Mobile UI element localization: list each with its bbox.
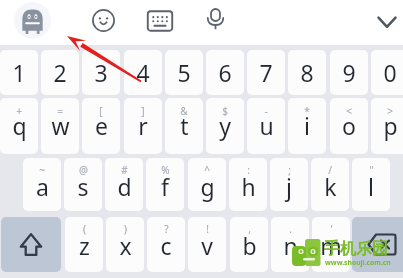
- staticText: r: [138, 110, 148, 141]
- button[interactable]: 2: [41, 50, 79, 95]
- button[interactable]: ;: [270, 158, 308, 211]
- staticText: k: [324, 171, 337, 202]
- button[interactable]: -: [247, 98, 285, 154]
- button[interactable]: @: [64, 158, 102, 211]
- button[interactable]: /: [311, 158, 349, 211]
- staticText: f: [161, 171, 169, 202]
- staticText: ,: [248, 222, 251, 236]
- staticText: t: [180, 110, 189, 141]
- staticText: g: [200, 171, 215, 202]
- button[interactable]: Switch keyboard: [147, 8, 173, 34]
- staticText: n: [283, 230, 298, 261]
- staticText: [: [99, 104, 103, 118]
- button[interactable]: ]: [124, 98, 162, 154]
- staticText: e: [95, 110, 108, 141]
- staticText: u: [259, 110, 274, 141]
- staticText: 8: [300, 57, 314, 88]
- button[interactable]: 3: [82, 50, 120, 95]
- staticText: 4: [136, 57, 150, 88]
- staticText: 7: [259, 57, 273, 88]
- staticText: z: [79, 230, 90, 261]
- staticText: l: [368, 171, 374, 202]
- staticText: x: [119, 230, 132, 261]
- staticText: %: [161, 163, 170, 177]
- staticText: c: [160, 230, 172, 261]
- staticText: 5: [177, 57, 191, 88]
- button[interactable]: >: [371, 98, 403, 154]
- staticText: +: [16, 104, 22, 118]
- button[interactable]: ": [352, 158, 390, 211]
- staticText: q: [12, 110, 27, 141]
- staticText: www.shouji.com.cn: [325, 258, 391, 267]
- staticText: @: [79, 163, 88, 177]
- button[interactable]: ~: [23, 158, 61, 211]
- staticText: ': [330, 222, 333, 236]
- staticText: #: [121, 163, 128, 177]
- button[interactable]: ,: [230, 217, 268, 272]
- button[interactable]: Backspace: [352, 217, 403, 272]
- staticText: 3: [94, 57, 108, 88]
- button[interactable]: ': [312, 217, 350, 272]
- button[interactable]: ?: [147, 217, 185, 272]
- button[interactable]: 1: [0, 50, 38, 95]
- button[interactable]: &: [165, 98, 203, 154]
- staticText: ;: [288, 163, 291, 177]
- staticText: !: [206, 222, 209, 236]
- button[interactable]: Emoji: [92, 9, 115, 32]
- button[interactable]: 9: [330, 50, 368, 95]
- button[interactable]: 5: [165, 50, 203, 95]
- staticText: a: [36, 171, 49, 202]
- staticText: /: [328, 163, 332, 177]
- staticText: ~: [39, 163, 45, 177]
- staticText: =: [57, 104, 63, 118]
- button[interactable]: 4: [124, 50, 162, 95]
- staticText: i: [304, 110, 310, 141]
- staticText: o: [342, 110, 356, 141]
- button[interactable]: 6: [206, 50, 244, 95]
- staticText: *: [304, 104, 310, 118]
- button[interactable]: 0: [371, 50, 403, 95]
- button[interactable]: !: [188, 217, 226, 272]
- staticText: 1: [12, 57, 26, 88]
- button[interactable]: +: [0, 98, 38, 154]
- button[interactable]: ): [106, 217, 144, 272]
- button[interactable]: *: [288, 98, 326, 154]
- staticText: 2: [53, 57, 67, 88]
- staticText: -: [264, 104, 268, 118]
- button[interactable]: 7: [247, 50, 285, 95]
- staticText: 手机乐园: [324, 239, 388, 259]
- staticText: y: [219, 110, 231, 141]
- staticText: 6: [218, 57, 232, 88]
- staticText: b: [242, 230, 257, 261]
- staticText: v: [201, 230, 213, 261]
- staticText: s: [77, 171, 89, 202]
- staticText: ): [124, 222, 127, 236]
- button[interactable]: (: [65, 217, 103, 272]
- button[interactable]: #: [105, 158, 143, 211]
- button[interactable]: $: [206, 98, 244, 154]
- staticText: 0: [383, 57, 397, 88]
- button[interactable]: =: [41, 98, 79, 154]
- button[interactable]: %: [146, 158, 184, 211]
- staticText: h: [241, 171, 256, 202]
- button[interactable]: .: [271, 217, 309, 272]
- staticText: .: [289, 222, 292, 236]
- staticText: <: [346, 104, 352, 118]
- button[interactable]: Assistant: [14, 2, 51, 39]
- button[interactable]: 8: [288, 50, 326, 95]
- staticText: m: [320, 230, 342, 261]
- button[interactable]: Shift: [1, 217, 61, 272]
- staticText: :: [247, 163, 250, 177]
- staticText: ": [369, 163, 374, 177]
- staticText: d: [117, 171, 132, 202]
- staticText: (: [83, 222, 86, 236]
- staticText: ]: [141, 104, 145, 118]
- button[interactable]: Voice input: [203, 6, 228, 31]
- staticText: $: [222, 104, 228, 118]
- staticText: &: [180, 104, 188, 118]
- button[interactable]: <: [330, 98, 368, 154]
- button[interactable]: ^: [188, 158, 226, 211]
- button[interactable]: Hide keyboard: [375, 10, 399, 34]
- button[interactable]: [: [82, 98, 120, 154]
- button[interactable]: :: [229, 158, 267, 211]
